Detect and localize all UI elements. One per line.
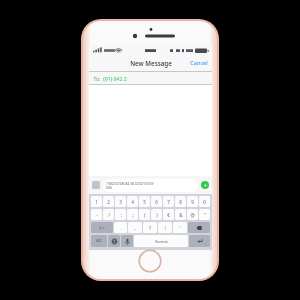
staticText: : bbox=[120, 212, 122, 218]
button[interactable]: @ bbox=[187, 209, 198, 220]
staticText: € bbox=[167, 212, 170, 218]
button[interactable]: : bbox=[115, 209, 126, 220]
staticText: New Message bbox=[130, 59, 172, 67]
button[interactable]: 9 bbox=[187, 196, 198, 207]
staticText: ) bbox=[156, 212, 158, 218]
staticText: To: bbox=[93, 75, 101, 82]
staticText: . bbox=[120, 225, 122, 231]
staticText: Razmak bbox=[155, 239, 168, 244]
button[interactable]: & bbox=[175, 209, 186, 220]
button[interactable]: 5 bbox=[139, 196, 150, 207]
staticText: 6 bbox=[155, 199, 158, 205]
button[interactable]: Send bbox=[201, 181, 209, 189]
staticText: & bbox=[179, 212, 183, 218]
button[interactable]: 738233728044 38-0202103 69 006 bbox=[103, 179, 198, 192]
staticText: @ bbox=[190, 212, 195, 218]
staticText: 3 bbox=[119, 199, 122, 205]
button[interactable]: 0 bbox=[199, 196, 210, 207]
staticText: Cancel bbox=[190, 59, 208, 67]
staticText: 0 bbox=[203, 199, 206, 205]
staticText: 5 bbox=[143, 199, 146, 205]
button[interactable]: Dictate bbox=[121, 235, 133, 247]
button[interactable]: #+= bbox=[91, 222, 113, 233]
button[interactable]: " bbox=[199, 209, 210, 220]
button[interactable]: 2 bbox=[103, 196, 114, 207]
staticText: ( bbox=[144, 212, 146, 218]
staticText: #+= bbox=[99, 226, 105, 230]
staticText: 8 bbox=[179, 199, 182, 205]
staticText: 2 bbox=[107, 199, 110, 205]
button[interactable]: ? bbox=[143, 222, 157, 233]
button[interactable]: ! bbox=[158, 222, 172, 233]
button[interactable]: Backspace bbox=[188, 222, 210, 233]
button[interactable]: ; bbox=[127, 209, 138, 220]
button[interactable]: Change keyboard bbox=[108, 235, 120, 247]
button[interactable]: - bbox=[91, 209, 102, 220]
staticText: , bbox=[134, 225, 136, 231]
staticText: 9 bbox=[191, 199, 194, 205]
other: Home bbox=[138, 249, 162, 273]
button[interactable]: 4 bbox=[127, 196, 138, 207]
staticText: ABC bbox=[96, 239, 102, 243]
staticText: 7 bbox=[167, 199, 170, 205]
button[interactable]: / bbox=[103, 209, 114, 220]
button[interactable]: . bbox=[114, 222, 127, 233]
staticText: 4 bbox=[131, 199, 134, 205]
staticText: ? bbox=[149, 225, 151, 231]
button[interactable]: 1 bbox=[91, 196, 102, 207]
button[interactable]: ) bbox=[151, 209, 162, 220]
button[interactable]: Razmak bbox=[134, 235, 188, 247]
staticText: 1 bbox=[95, 199, 98, 205]
button[interactable]: , bbox=[128, 222, 142, 233]
staticText: / bbox=[108, 212, 110, 218]
button[interactable]: Return bbox=[189, 235, 210, 247]
button[interactable]: 6 bbox=[151, 196, 162, 207]
button[interactable]: Cancel bbox=[186, 56, 212, 70]
button[interactable]: ( bbox=[139, 209, 150, 220]
staticText: - bbox=[96, 212, 98, 218]
button[interactable]: ' bbox=[173, 222, 187, 233]
staticText: (91) 042 2 bbox=[103, 75, 127, 82]
staticText: ! bbox=[164, 225, 166, 231]
staticText: ; bbox=[132, 212, 134, 218]
button[interactable]: 3 bbox=[115, 196, 126, 207]
button[interactable]: Camera bbox=[92, 181, 100, 189]
staticText: 738233728044 38-0202103 69 006 bbox=[106, 181, 154, 190]
button[interactable]: 7 bbox=[163, 196, 174, 207]
button[interactable]: ABC bbox=[91, 235, 107, 247]
button[interactable]: € bbox=[163, 209, 174, 220]
button[interactable]: 8 bbox=[175, 196, 186, 207]
staticText: " bbox=[204, 212, 206, 218]
button[interactable]: To: bbox=[89, 72, 212, 85]
staticText: ' bbox=[179, 225, 181, 231]
